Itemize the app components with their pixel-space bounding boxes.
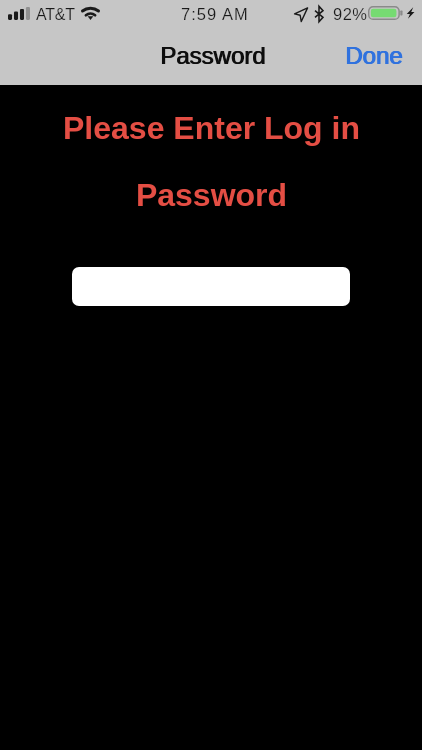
staticText: Password [160,42,266,69]
staticText: Password [161,42,267,69]
button[interactable]: Password entry field [72,267,350,306]
staticText: Please Enter Log in Password [63,110,360,212]
staticText: Done [345,42,403,69]
staticText: 7:59 AM [181,5,249,23]
staticText: Done [346,42,404,69]
button[interactable]: Done [330,35,418,75]
staticText: Password [160,42,266,69]
staticText: 92% [333,5,368,23]
staticText: Done [345,42,403,69]
staticText: AT&T [36,6,75,24]
